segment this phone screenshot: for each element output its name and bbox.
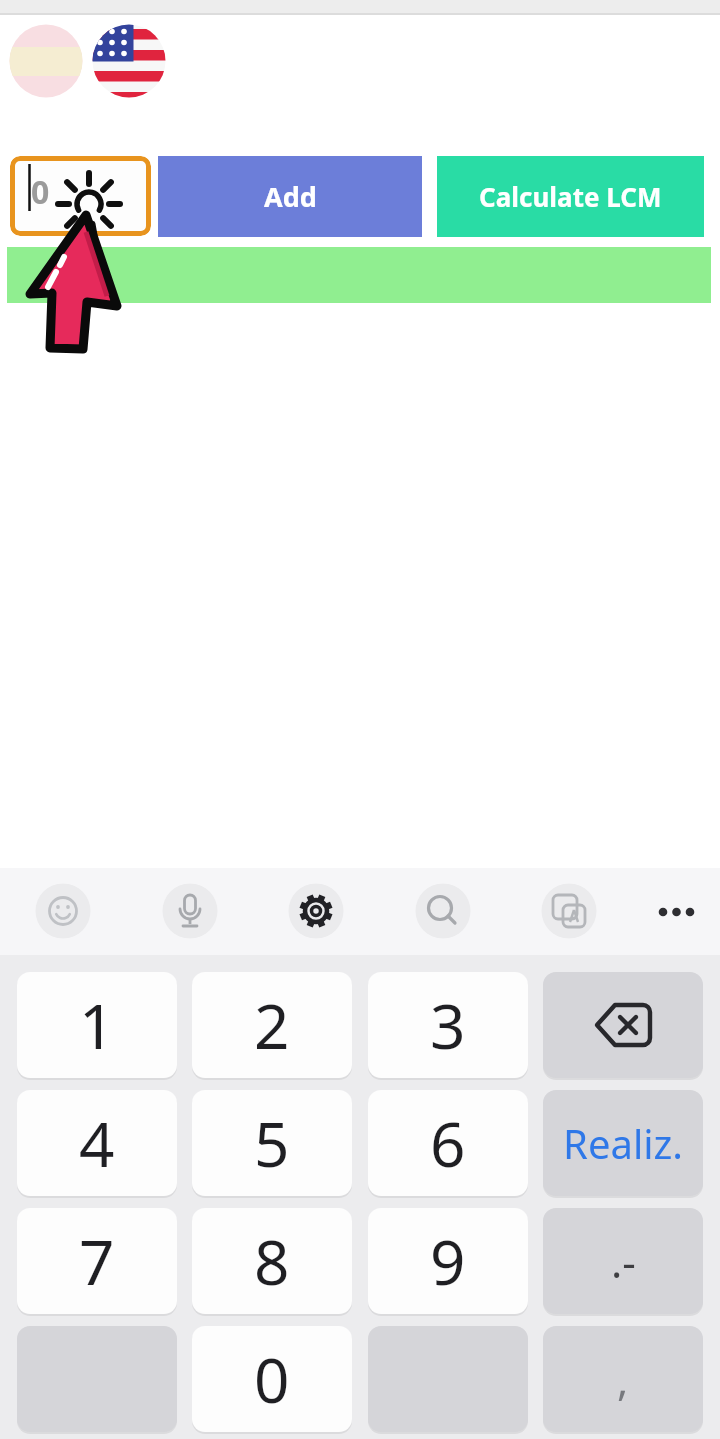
staticText: 9 xyxy=(430,1219,466,1303)
button[interactable] xyxy=(415,883,471,939)
button[interactable]: 8 xyxy=(192,1208,352,1314)
button[interactable]: 4 xyxy=(17,1090,177,1196)
button[interactable]: .- xyxy=(543,1208,703,1314)
button[interactable]: 6 xyxy=(368,1090,528,1196)
staticText: 1 xyxy=(79,983,115,1067)
button[interactable] xyxy=(648,883,704,939)
staticText: Add xyxy=(264,178,317,215)
button[interactable]: 9 xyxy=(368,1208,528,1314)
button[interactable] xyxy=(541,883,597,939)
button[interactable]: 3 xyxy=(368,972,528,1078)
staticText: 3 xyxy=(430,983,466,1067)
button[interactable]: 7 xyxy=(17,1208,177,1314)
button[interactable]: , xyxy=(543,1326,703,1432)
button[interactable] xyxy=(288,883,344,939)
staticText: 5 xyxy=(254,1101,290,1185)
staticText: Calculate LCM xyxy=(479,179,662,214)
staticText: 4 xyxy=(79,1101,115,1185)
button[interactable]: Realiz. xyxy=(543,1090,703,1196)
staticText: 8 xyxy=(254,1219,290,1303)
staticText: 7 xyxy=(79,1219,115,1303)
staticText: 0 xyxy=(31,170,50,214)
button[interactable]: 5 xyxy=(192,1090,352,1196)
staticText: 0 xyxy=(254,1337,290,1421)
button[interactable] xyxy=(10,156,151,236)
staticText: , xyxy=(617,1351,629,1408)
button[interactable]: Add xyxy=(158,156,422,237)
staticText: Realiz. xyxy=(563,1116,684,1170)
button[interactable]: 1 xyxy=(17,972,177,1078)
button[interactable] xyxy=(543,972,703,1078)
button[interactable]: Calculate LCM xyxy=(437,156,704,237)
button[interactable]: 2 xyxy=(192,972,352,1078)
staticText: 2 xyxy=(254,983,290,1067)
button[interactable] xyxy=(35,883,91,939)
staticText: 6 xyxy=(430,1101,466,1185)
button[interactable] xyxy=(162,883,218,939)
staticText: .- xyxy=(611,1233,636,1290)
button[interactable]: 0 xyxy=(192,1326,352,1432)
